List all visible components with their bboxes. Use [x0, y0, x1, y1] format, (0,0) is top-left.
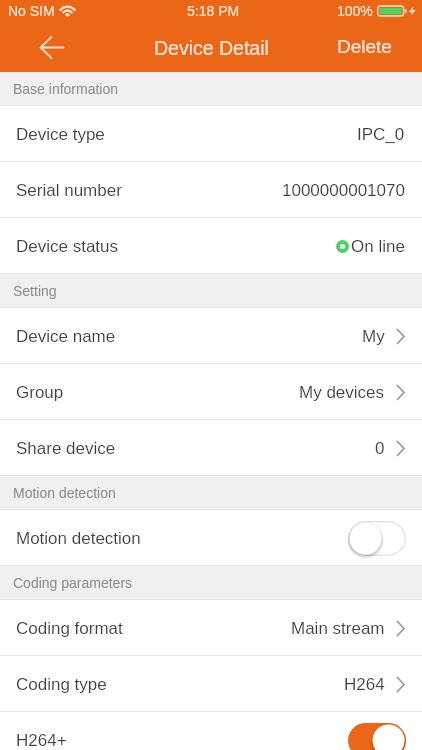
staticText: Device name — [16, 327, 116, 346]
staticText: Device type — [16, 125, 105, 144]
staticText: My devices — [299, 383, 385, 402]
staticText: Main stream — [291, 619, 385, 638]
staticText: Serial number — [16, 181, 122, 200]
staticText: 0 — [375, 439, 385, 458]
button[interactable]: Coding format — [0, 600, 422, 656]
staticText: Coding parameters — [13, 575, 133, 591]
staticText: IPC_0 — [357, 125, 405, 144]
staticText: Coding format — [16, 619, 123, 638]
button[interactable]: Serial number — [0, 162, 422, 218]
staticText: 5:18 PM — [187, 3, 240, 19]
staticText: Coding type — [16, 675, 107, 694]
button[interactable]: Group — [0, 364, 422, 420]
button[interactable]: Delete — [319, 22, 422, 72]
staticText: Share device — [16, 439, 116, 458]
button[interactable]: Device status — [0, 218, 422, 274]
button[interactable]: Device name — [0, 308, 422, 364]
button[interactable]: H264+ — [0, 712, 422, 750]
staticText: Device status — [16, 237, 119, 256]
staticText: On line — [351, 237, 405, 256]
staticText: Delete — [337, 36, 392, 57]
button[interactable]: Share device — [0, 420, 422, 476]
staticText: 1000000001070 — [282, 181, 405, 200]
button[interactable]: Motion detection — [0, 510, 422, 566]
staticText: Group — [16, 383, 64, 402]
staticText: Base information — [13, 81, 119, 97]
staticText: 100% — [337, 3, 373, 19]
staticText: Device Detail — [154, 37, 269, 59]
staticText: No SIM — [8, 3, 55, 19]
staticText: H264 — [344, 675, 385, 694]
staticText: My — [362, 327, 385, 346]
staticText: Motion detection — [13, 485, 116, 501]
staticText: H264+ — [16, 731, 67, 750]
button[interactable]: Switch on — [348, 723, 406, 750]
button[interactable]: Back — [28, 22, 76, 72]
staticText: Setting — [13, 283, 57, 299]
button[interactable]: Coding type — [0, 656, 422, 712]
button[interactable]: Device type — [0, 106, 422, 162]
button[interactable]: Switch off — [348, 521, 406, 556]
staticText: Motion detection — [16, 529, 141, 548]
